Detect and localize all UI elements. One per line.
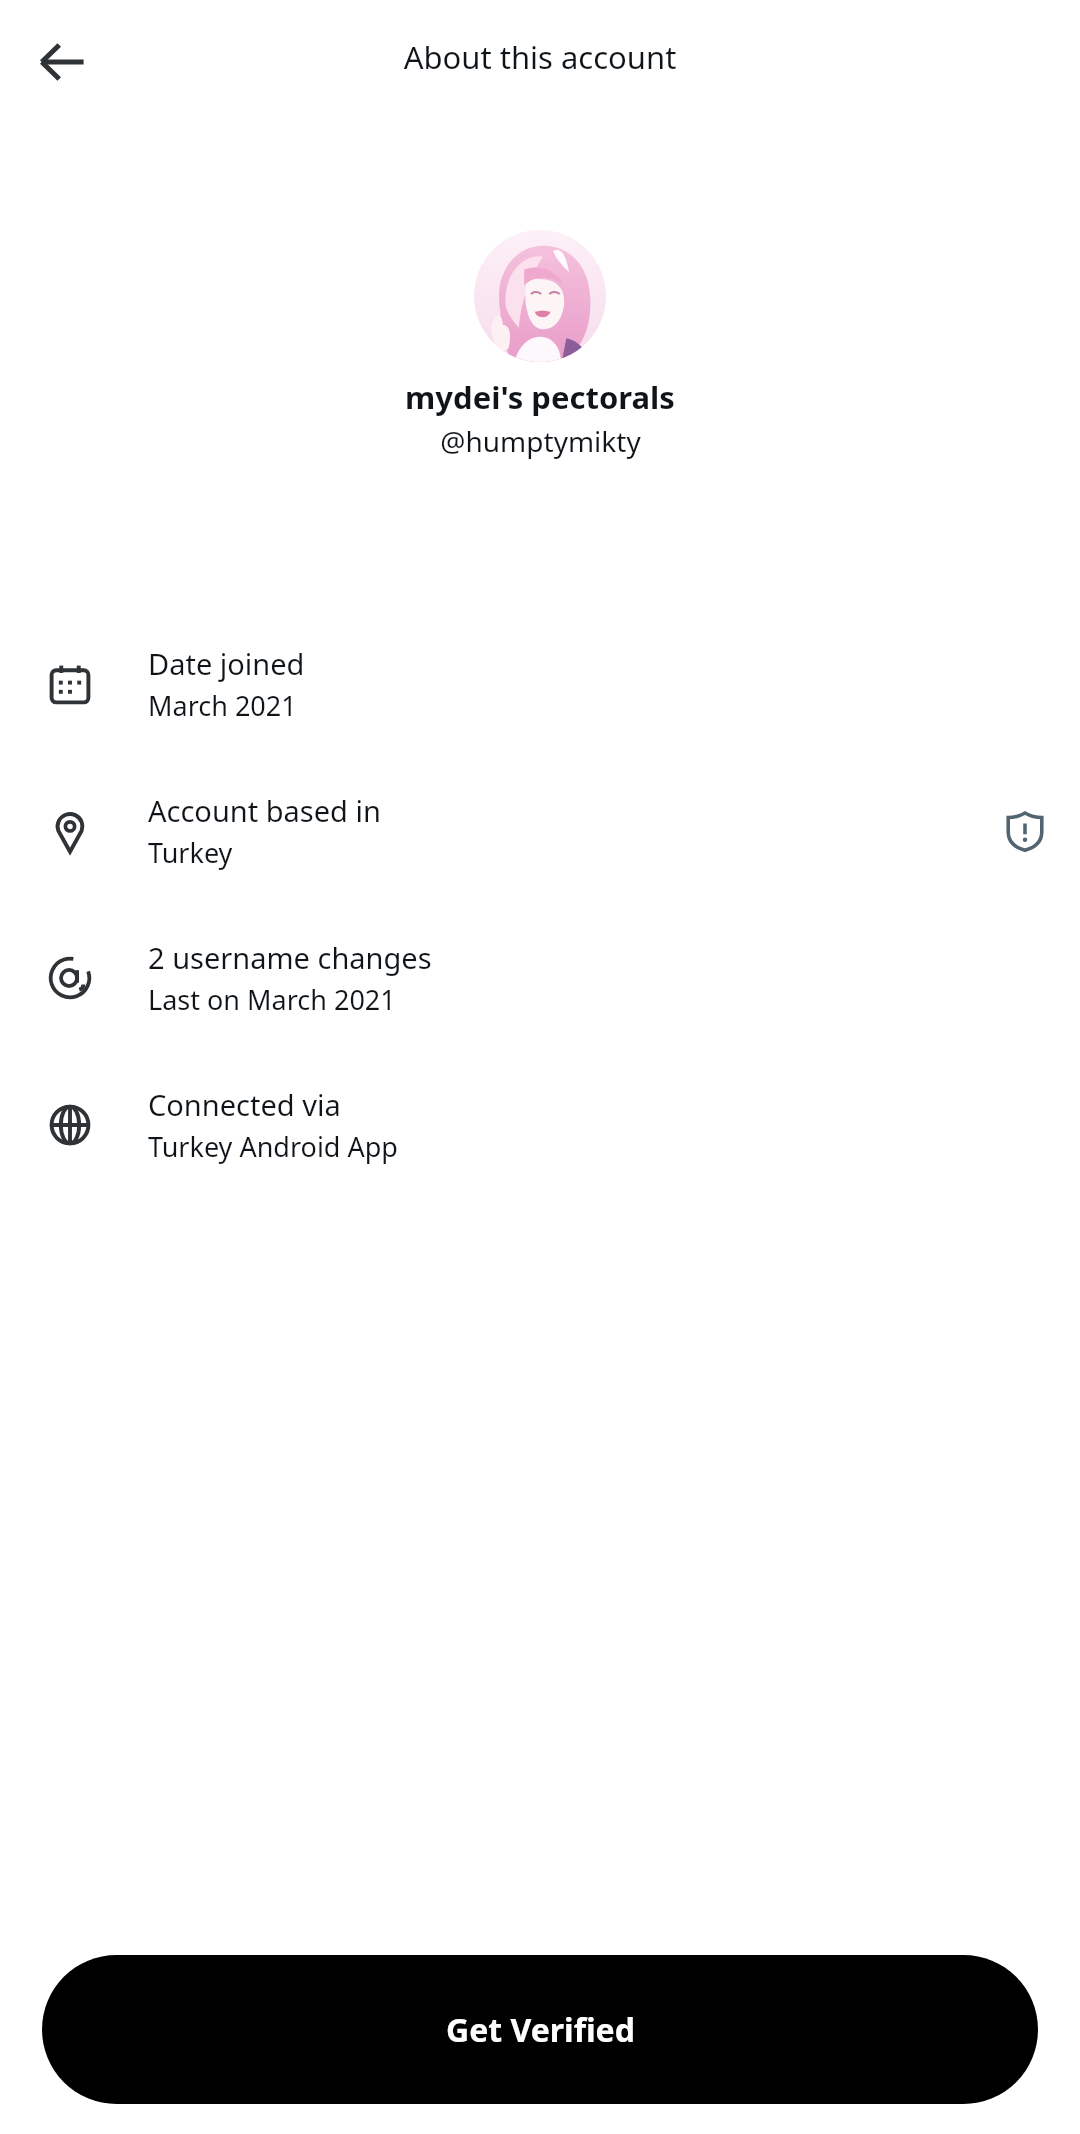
staticText: 2 username changes [148,938,432,977]
staticText: Get Verified [446,2008,635,2052]
staticText: Date joined [148,644,305,683]
button[interactable]: Account location info [988,794,1062,868]
staticText: mydei's pectorals [405,376,675,418]
staticText: Turkey [148,834,233,871]
button[interactable]: Profile photo [474,230,606,362]
staticText: Account based in [148,791,381,830]
button[interactable]: Get Verified [42,1955,1038,2104]
button[interactable]: Connected via [0,1051,1080,1198]
button[interactable]: Back [18,18,106,106]
button[interactable]: Date joined [0,610,1080,757]
staticText: Turkey Android App [148,1128,398,1165]
staticText: March 2021 [148,687,297,724]
staticText: Last on March 2021 [148,981,396,1018]
staticText: About this account [0,36,1080,78]
button[interactable]: Account based in [0,757,1080,904]
staticText: @humptymikty [440,422,641,460]
staticText: Connected via [148,1085,341,1124]
button[interactable]: 2 username changes [0,904,1080,1051]
